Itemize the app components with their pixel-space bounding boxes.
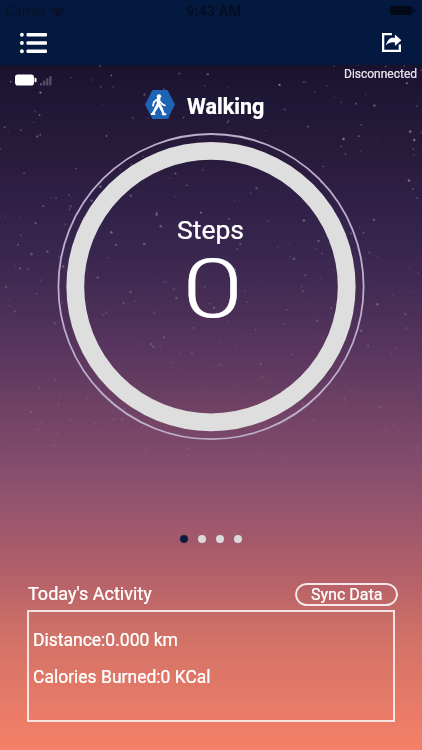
staticText: Sync Data: [311, 585, 383, 604]
staticText: Today's Activity: [28, 583, 152, 604]
button[interactable]: Share: [371, 22, 411, 62]
staticText: 9:43 AM: [186, 3, 242, 20]
button[interactable]: Sync Data: [295, 583, 398, 606]
staticText: Disconnected: [344, 67, 418, 81]
button[interactable]: Menu: [13, 23, 53, 63]
button[interactable]: [180, 535, 188, 543]
button[interactable]: [198, 535, 206, 543]
button[interactable]: [216, 535, 224, 543]
staticText: Distance:0.000 km: [33, 630, 178, 651]
staticText: 0: [182, 241, 244, 337]
staticText: Calories Burned:0 KCal: [33, 667, 211, 688]
staticText: Walking: [187, 94, 265, 119]
button[interactable]: [234, 535, 242, 543]
staticText: Carrier: [5, 3, 47, 19]
staticText: Steps: [177, 214, 245, 245]
